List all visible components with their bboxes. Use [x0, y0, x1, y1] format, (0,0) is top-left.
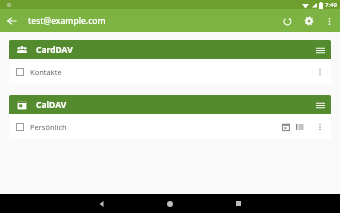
button[interactable]: Settings — [298, 10, 320, 32]
button[interactable]: Back — [68, 194, 136, 213]
button[interactable]: More options — [311, 118, 329, 136]
staticText: 7:49 — [325, 1, 337, 9]
button[interactable]: CalDAV — [9, 95, 331, 114]
button[interactable]: Refresh — [276, 10, 298, 32]
button[interactable]: CardDAV — [9, 40, 331, 59]
button[interactable]: Tasks — [293, 120, 307, 134]
button[interactable]: More options — [311, 63, 329, 81]
button[interactable]: Home — [136, 194, 204, 213]
staticText: Kontakte — [30, 67, 62, 77]
staticText: test@example.com — [28, 15, 106, 27]
button[interactable]: Menu — [311, 96, 329, 114]
button[interactable]: More options — [320, 12, 338, 30]
button[interactable]: Calendar — [279, 120, 293, 134]
button[interactable]: Menu — [311, 41, 329, 59]
button[interactable]: Persönlich — [9, 114, 331, 139]
button[interactable]: Recent apps — [204, 194, 272, 213]
staticText: CardDAV — [36, 44, 73, 56]
staticText: Persönlich — [30, 122, 67, 132]
button[interactable]: Back — [0, 9, 23, 32]
button[interactable]: Kontakte — [9, 59, 331, 84]
staticText: CalDAV — [36, 99, 67, 111]
